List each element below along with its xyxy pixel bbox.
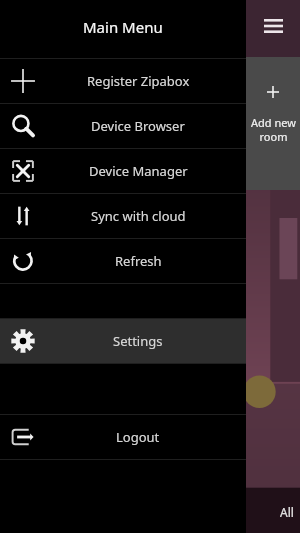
staticText: Refresh <box>115 252 162 270</box>
button[interactable]: Open menu <box>258 11 288 41</box>
button[interactable]: Register Zipabox <box>0 59 246 103</box>
staticText: Main Menu <box>83 17 163 37</box>
button[interactable]: Device Browser <box>0 104 246 148</box>
button[interactable]: Logout <box>0 415 246 459</box>
staticText: All <box>280 504 294 520</box>
button[interactable]: Add new room <box>246 57 300 190</box>
staticText: Device Manager <box>89 162 188 180</box>
button[interactable]: All <box>280 504 294 520</box>
staticText: Sync with cloud <box>91 207 186 225</box>
button[interactable]: Refresh <box>0 239 246 283</box>
button[interactable]: Settings <box>0 319 246 363</box>
staticText: Add new room <box>251 115 296 144</box>
button[interactable]: Device Manager <box>0 149 246 193</box>
staticText: Logout <box>116 428 160 446</box>
staticText: Register Zipabox <box>87 72 190 90</box>
button[interactable]: Sync with cloud <box>0 194 246 238</box>
staticText: Settings <box>113 332 163 350</box>
staticText: Device Browser <box>91 117 185 135</box>
